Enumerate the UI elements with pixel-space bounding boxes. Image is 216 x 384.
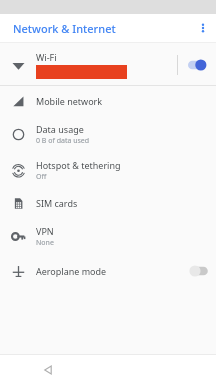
button[interactable]: Hotspot & tethering (0, 152, 216, 188)
button[interactable]: SIM cards (0, 188, 216, 218)
button[interactable]: Aeroplane mode (0, 254, 216, 288)
staticText: Network & Internet (13, 21, 116, 36)
staticText: Wi-Fi (36, 51, 57, 63)
staticText: None (36, 238, 54, 248)
button[interactable]: VPN (0, 218, 216, 254)
staticText: VPN (36, 225, 54, 237)
staticText: Hotspot & tethering (36, 159, 121, 171)
button[interactable]: Toggle off (188, 264, 210, 278)
button[interactable]: Data usage (0, 116, 216, 152)
button[interactable]: Wi-Fi (0, 45, 216, 85)
staticText: Aeroplane mode (36, 265, 107, 277)
button[interactable]: Toggle on (188, 58, 210, 72)
staticText: Off (36, 172, 47, 182)
staticText: SIM cards (36, 197, 78, 209)
staticText: Mobile network (36, 95, 103, 107)
button[interactable]: More options (190, 15, 216, 41)
staticText: 0 B of data used (36, 136, 90, 146)
button[interactable]: Back (36, 358, 60, 382)
button[interactable]: Mobile network (0, 86, 216, 116)
staticText: Data usage (36, 123, 84, 135)
